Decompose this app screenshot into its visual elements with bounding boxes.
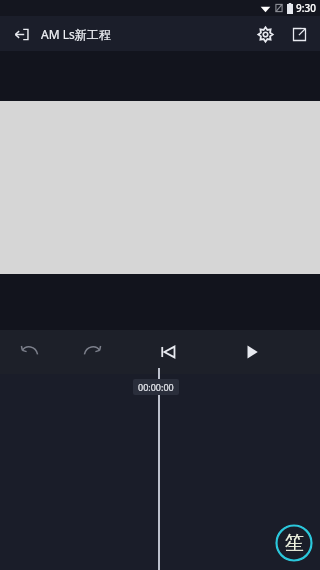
button[interactable]: Settings — [248, 17, 282, 51]
button[interactable]: Export — [282, 17, 316, 51]
button[interactable]: Undo — [14, 336, 46, 368]
staticText: AM Ls新工程 — [41, 26, 111, 42]
staticText: 00:00:00 — [138, 381, 174, 393]
button[interactable]: Play — [236, 336, 268, 368]
staticText: 9:30 — [296, 1, 316, 15]
button[interactable]: Watermark — [275, 524, 313, 562]
button[interactable]: Redo — [76, 336, 108, 368]
staticText: 笙 — [285, 531, 304, 555]
button[interactable]: Skip to start — [152, 336, 184, 368]
button[interactable]: Back — [6, 19, 36, 49]
